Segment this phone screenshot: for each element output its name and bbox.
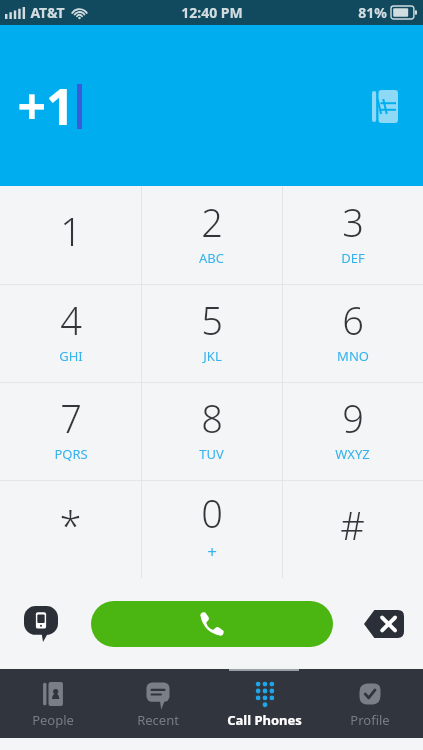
staticText: 0 <box>201 487 223 539</box>
button[interactable]: 2 <box>141 186 282 284</box>
button[interactable]: Call Phones <box>211 669 317 738</box>
button[interactable]: 8 <box>141 382 282 480</box>
button[interactable]: Backspace <box>361 601 407 647</box>
button[interactable]: 1 <box>0 186 141 284</box>
staticText: 9 <box>342 392 364 444</box>
staticText: # <box>340 499 365 551</box>
button[interactable]: 0 <box>141 480 282 578</box>
staticText: 81% <box>358 3 387 22</box>
button[interactable]: * <box>0 480 141 578</box>
staticText: DEF <box>341 249 365 267</box>
button[interactable]: Recent <box>105 669 211 738</box>
button[interactable]: Profile <box>317 669 423 738</box>
staticText: 1 <box>60 205 82 257</box>
button[interactable]: Contacts <box>363 84 407 128</box>
staticText: 3 <box>342 196 364 248</box>
staticText: MNO <box>337 347 369 365</box>
staticText: JKL <box>203 347 222 365</box>
staticText: PQRS <box>54 445 88 463</box>
staticText: 6 <box>342 294 364 346</box>
button[interactable]: 9 <box>282 382 423 480</box>
button[interactable]: Send message <box>18 601 64 647</box>
button[interactable]: 7 <box>0 382 141 480</box>
button[interactable]: 5 <box>141 284 282 382</box>
button[interactable]: 3 <box>282 186 423 284</box>
staticText: Recent <box>137 711 179 729</box>
staticText: Profile <box>350 711 390 729</box>
staticText: People <box>32 711 74 729</box>
staticText: 7 <box>60 392 82 444</box>
staticText: AT&T <box>30 3 65 22</box>
button[interactable]: # <box>282 480 423 578</box>
staticText: ABC <box>199 249 224 267</box>
button[interactable]: Call <box>91 601 333 647</box>
staticText: Call Phones <box>227 711 302 729</box>
staticText: 12:40 PM <box>181 3 243 22</box>
staticText: 4 <box>60 294 82 346</box>
button[interactable]: 4 <box>0 284 141 382</box>
staticText: GHI <box>59 347 83 365</box>
staticText: + <box>207 540 217 563</box>
staticText: +1 <box>17 72 75 140</box>
staticText: WXYZ <box>335 445 370 463</box>
staticText: * <box>59 498 82 552</box>
button[interactable]: 6 <box>282 284 423 382</box>
staticText: TUV <box>199 445 224 463</box>
button[interactable]: People <box>0 669 105 738</box>
staticText: 2 <box>201 196 223 248</box>
staticText: 8 <box>201 392 223 444</box>
staticText: 5 <box>201 294 223 346</box>
